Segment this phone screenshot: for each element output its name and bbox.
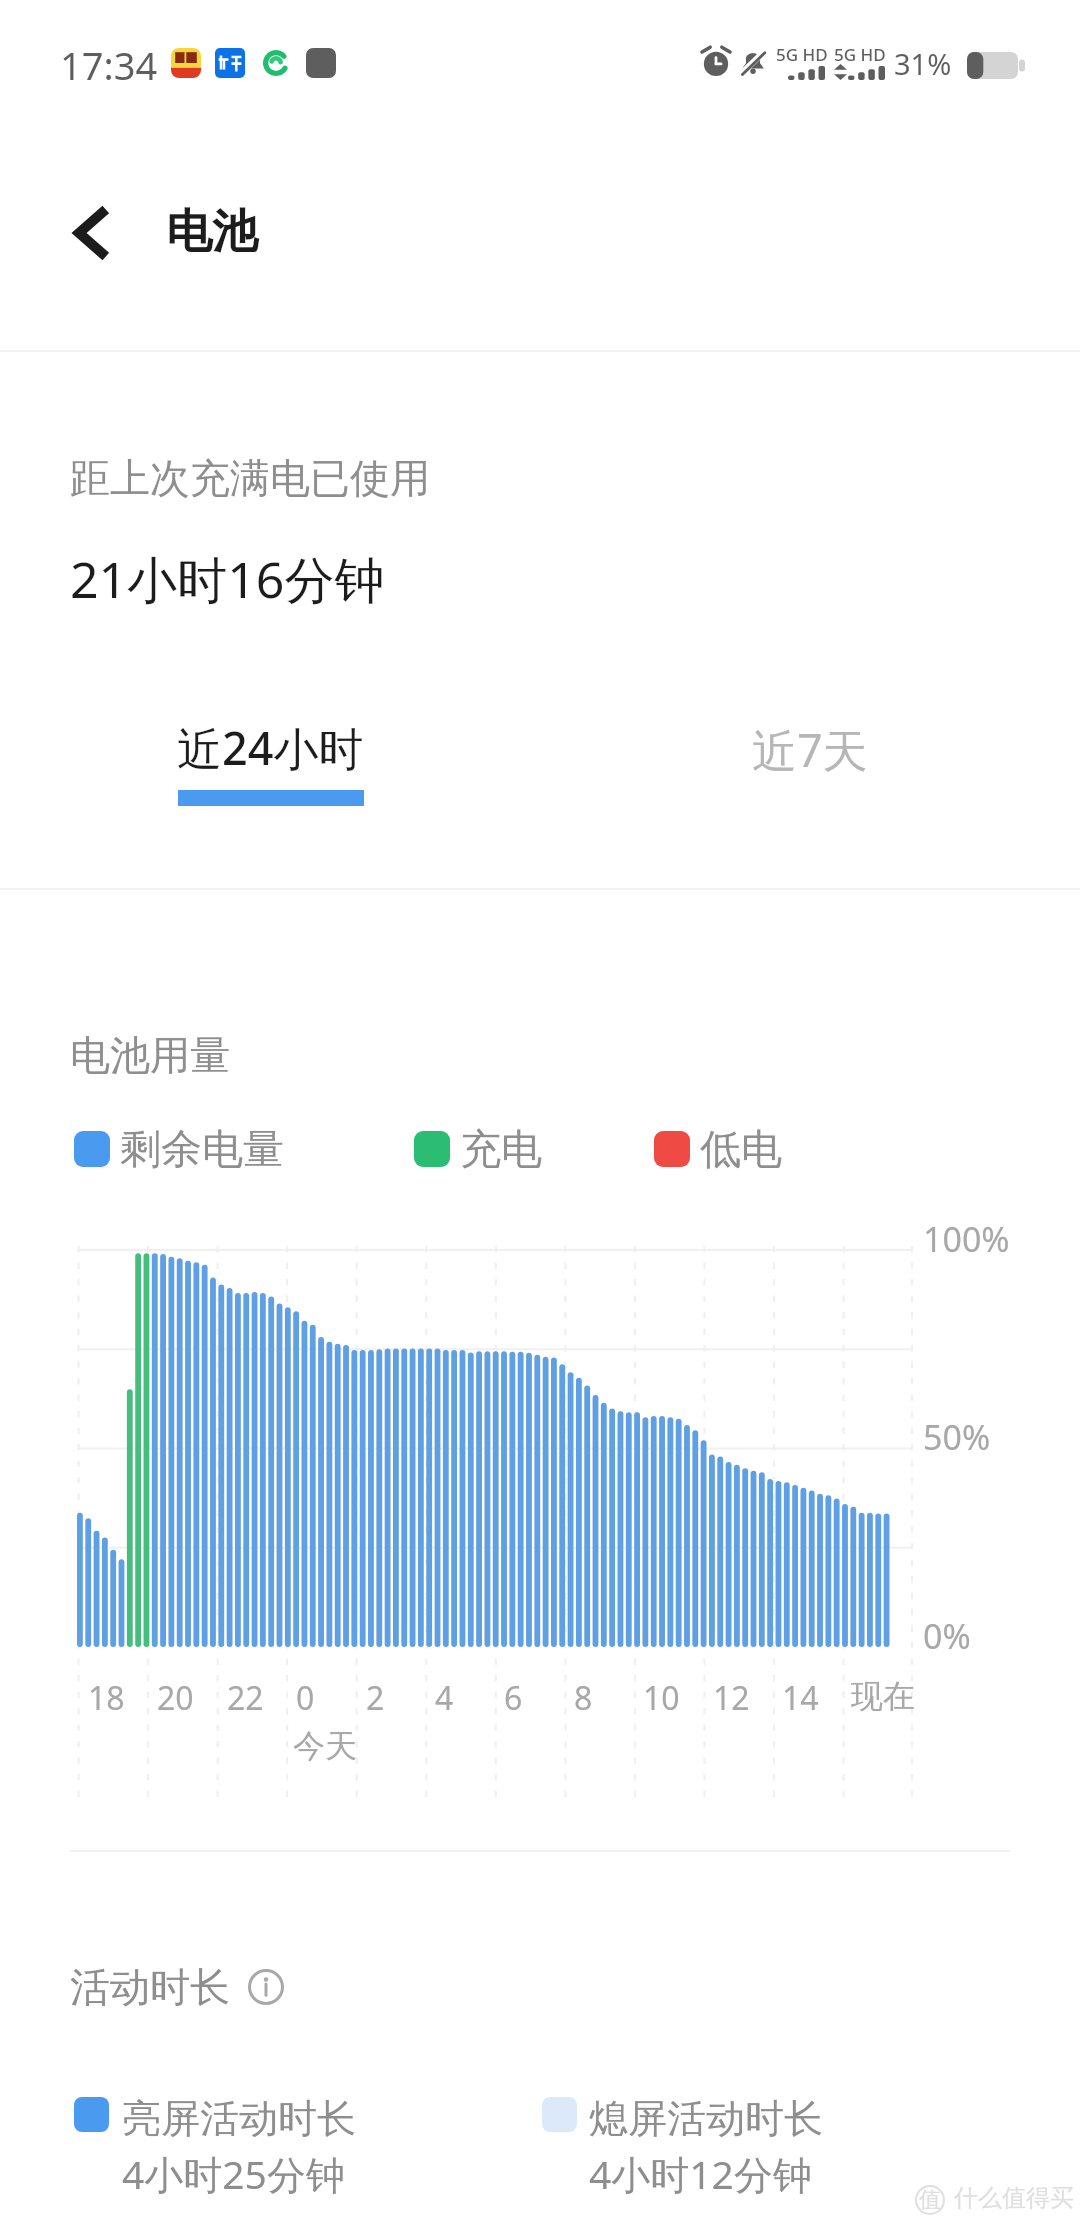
staticText: 10	[643, 1676, 680, 1720]
staticText: 5G HD	[776, 43, 828, 66]
staticText: 现在	[851, 1676, 915, 1716]
staticText: 4小时12分钟	[589, 2147, 812, 2200]
staticText: 18	[88, 1676, 125, 1720]
staticText: 距上次充满电已使用	[70, 453, 430, 503]
staticText: 2	[366, 1676, 385, 1720]
staticText: 14	[782, 1676, 819, 1720]
staticText: 4	[435, 1676, 454, 1720]
staticText: 什么值得买	[954, 2183, 1074, 2213]
staticText: 近24小时	[177, 717, 364, 778]
staticText: 活动时长	[70, 1962, 230, 2012]
staticText: 低电	[700, 1124, 782, 1176]
staticText: 今天	[293, 1726, 357, 1766]
staticText: 8	[574, 1676, 593, 1720]
staticText: 50%	[923, 1414, 991, 1460]
staticText: 充电	[460, 1124, 542, 1176]
staticText: 12	[713, 1676, 750, 1720]
button[interactable]: 近24小时	[130, 690, 410, 820]
staticText: 21小时16分钟	[70, 545, 385, 613]
other: Info	[248, 1969, 284, 2005]
button[interactable]: 近7天	[690, 690, 930, 800]
staticText: 0	[296, 1676, 315, 1720]
staticText: 100%	[923, 1216, 1010, 1262]
button[interactable]: 活动时长	[70, 1962, 284, 2012]
staticText: 电池用量	[70, 1030, 230, 1080]
staticText: 17:34	[60, 39, 158, 91]
staticText: 0%	[923, 1613, 971, 1659]
staticText: 22	[227, 1676, 264, 1720]
staticText: 剩余电量	[120, 1124, 284, 1176]
staticText: 近7天	[752, 719, 868, 780]
staticText: 熄屏活动时长	[589, 2094, 823, 2143]
staticText: 电池	[166, 203, 258, 261]
staticText: 5G HD	[834, 43, 886, 66]
staticText: 亮屏活动时长	[122, 2094, 356, 2143]
staticText: 6	[504, 1676, 523, 1720]
staticText: 31%	[894, 44, 952, 83]
staticText: 20	[157, 1676, 194, 1720]
staticText: 4小时25分钟	[122, 2147, 345, 2200]
staticText: 值	[919, 2186, 941, 2214]
button[interactable]: Back	[55, 197, 127, 269]
